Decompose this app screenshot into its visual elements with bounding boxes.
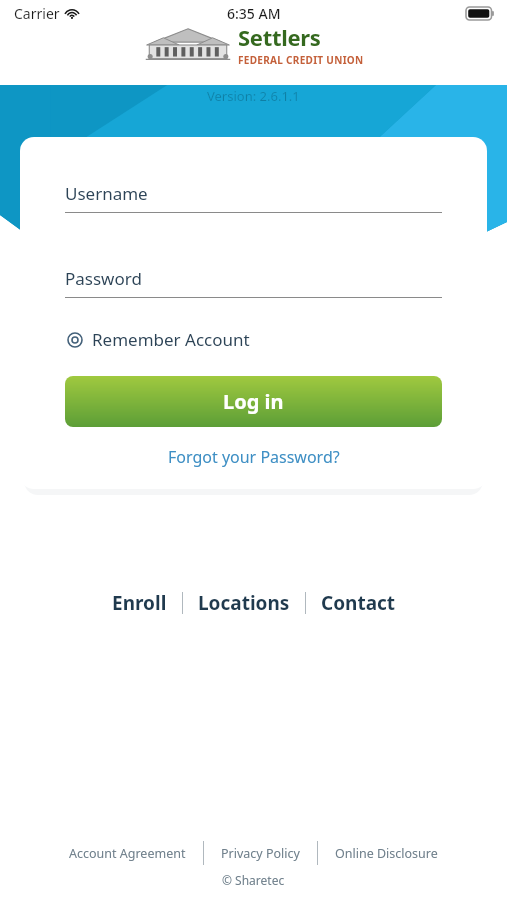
button[interactable]: Enroll (110, 586, 169, 620)
staticText: Carrier (14, 4, 60, 23)
button[interactable]: Privacy Policy (220, 842, 301, 865)
staticText: Version: 2.6.1.1 (207, 87, 300, 105)
button[interactable]: Forgot your Password? (158, 442, 350, 472)
button[interactable]: Locations (196, 586, 292, 620)
staticText: Log in (223, 388, 284, 415)
staticText: Settlers (238, 22, 321, 52)
button[interactable]: Remember Account (65, 324, 252, 355)
button[interactable]: Password (65, 267, 442, 298)
staticText: 6:35 AM (227, 4, 281, 23)
staticText: FEDERAL CREDIT UNION (238, 53, 364, 67)
staticText: Password (65, 267, 142, 290)
button[interactable]: Online Disclosure (334, 842, 439, 865)
staticText: © Sharetec (222, 872, 285, 888)
button[interactable]: Contact (319, 586, 398, 620)
button[interactable]: Username (65, 182, 442, 213)
staticText: Remember Account (92, 328, 250, 351)
button[interactable]: Account Agreement (68, 842, 187, 865)
button[interactable]: Log in (65, 376, 442, 427)
staticText: Username (65, 182, 148, 205)
